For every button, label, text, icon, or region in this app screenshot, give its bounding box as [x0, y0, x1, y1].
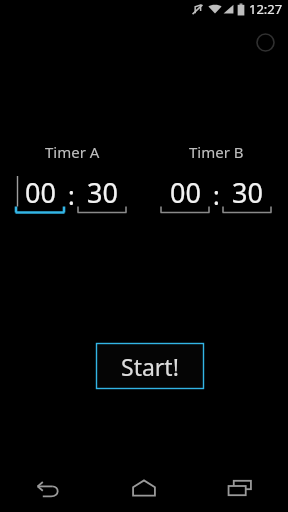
staticText: Timer B — [189, 142, 244, 162]
button[interactable]: Progress — [252, 29, 279, 56]
button[interactable]: 00 — [15, 174, 65, 214]
staticText: Start! — [121, 351, 179, 382]
button[interactable]: Recent apps — [192, 464, 288, 512]
staticText: 30 — [232, 174, 263, 211]
button[interactable]: Start! — [96, 343, 204, 389]
staticText: 00 — [25, 174, 56, 211]
staticText: : — [68, 178, 75, 208]
staticText: : — [213, 178, 220, 208]
staticText: Timer A — [45, 142, 100, 162]
staticText: 00 — [170, 174, 201, 211]
staticText: 30 — [87, 174, 118, 211]
button[interactable]: Back — [0, 464, 96, 512]
button[interactable]: 30 — [222, 174, 272, 214]
button[interactable]: 00 — [160, 174, 210, 214]
button[interactable]: Home — [96, 464, 192, 512]
staticText: 12:27 — [249, 0, 283, 18]
button[interactable]: 30 — [77, 174, 127, 214]
